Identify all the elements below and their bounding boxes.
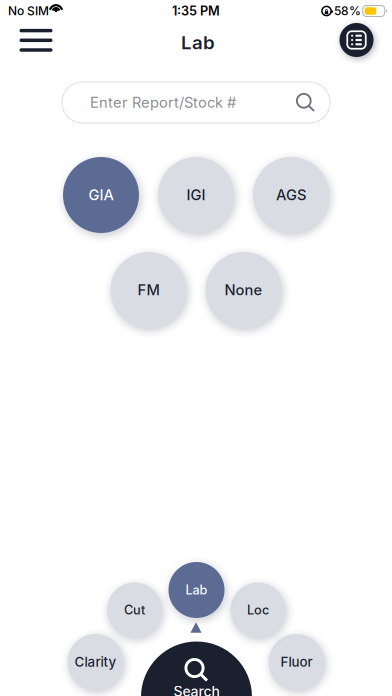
staticText: Search <box>173 683 219 696</box>
staticText: GIA <box>88 186 113 204</box>
staticText: Lab <box>185 582 207 598</box>
staticText: Loc <box>247 602 269 618</box>
staticText: IGI <box>186 186 205 204</box>
staticText: 58% <box>334 4 361 18</box>
button[interactable]: Saved lists <box>336 20 376 60</box>
staticText: Lab <box>181 31 215 54</box>
staticText: None <box>224 281 262 299</box>
button[interactable]: Fluor <box>268 634 324 690</box>
button[interactable]: Loc <box>230 582 285 637</box>
button[interactable]: Menu <box>14 20 58 60</box>
button[interactable]: GIA <box>63 157 139 233</box>
button[interactable]: IGI <box>158 157 234 233</box>
button[interactable]: Clarity <box>67 634 123 690</box>
button[interactable]: None <box>205 252 281 328</box>
staticText: 1:35 PM <box>172 3 220 19</box>
staticText: No SIM <box>8 4 49 18</box>
button[interactable]: FM <box>110 252 186 328</box>
staticText: Fluor <box>280 654 312 670</box>
staticText: Clarity <box>74 654 116 670</box>
staticText: AGS <box>276 186 306 204</box>
button[interactable]: Lab <box>168 562 224 618</box>
staticText: FM <box>137 281 159 299</box>
button[interactable]: Enter Report/Stock # <box>62 82 330 123</box>
staticText: Cut <box>124 602 145 618</box>
button[interactable]: Search <box>141 641 252 696</box>
staticText: Enter Report/Stock # <box>90 94 236 111</box>
button[interactable]: AGS <box>253 157 329 233</box>
button[interactable]: Cut <box>107 582 162 637</box>
